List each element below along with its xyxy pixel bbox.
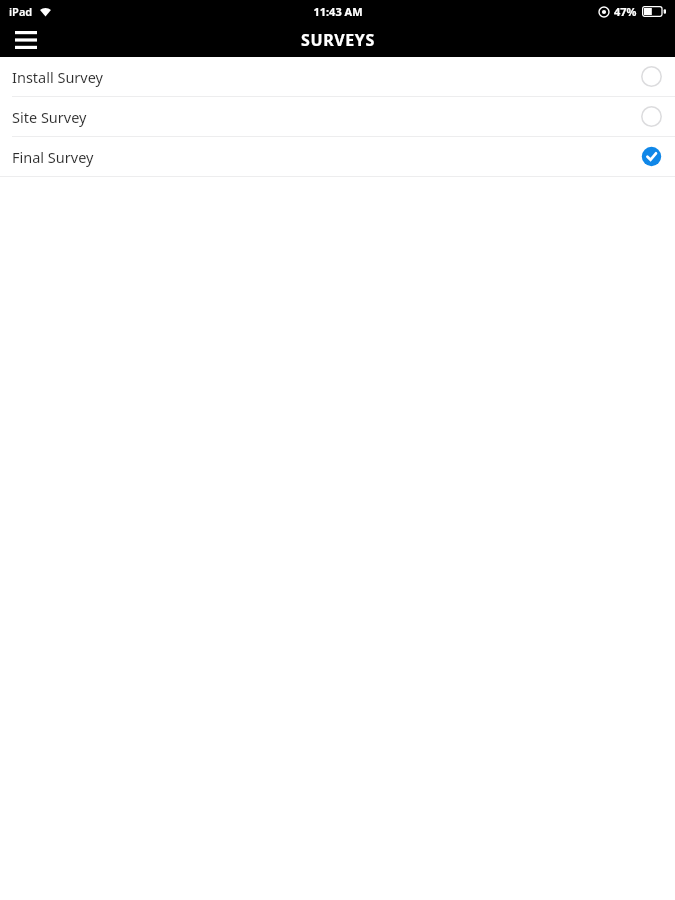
staticText: 11:43 AM [313, 4, 363, 19]
button[interactable]: Final Survey [0, 137, 675, 176]
button[interactable]: Site Survey [0, 97, 675, 136]
staticText: iPad [9, 4, 33, 19]
staticText: 47% [614, 4, 637, 19]
staticText: Final Survey [12, 147, 641, 167]
button[interactable]: Open navigation menu [6, 22, 46, 57]
staticText: Install Survey [12, 67, 641, 87]
staticText: Site Survey [12, 107, 641, 127]
staticText: SURVEYS [301, 29, 375, 51]
button[interactable]: Install Survey [0, 57, 675, 96]
